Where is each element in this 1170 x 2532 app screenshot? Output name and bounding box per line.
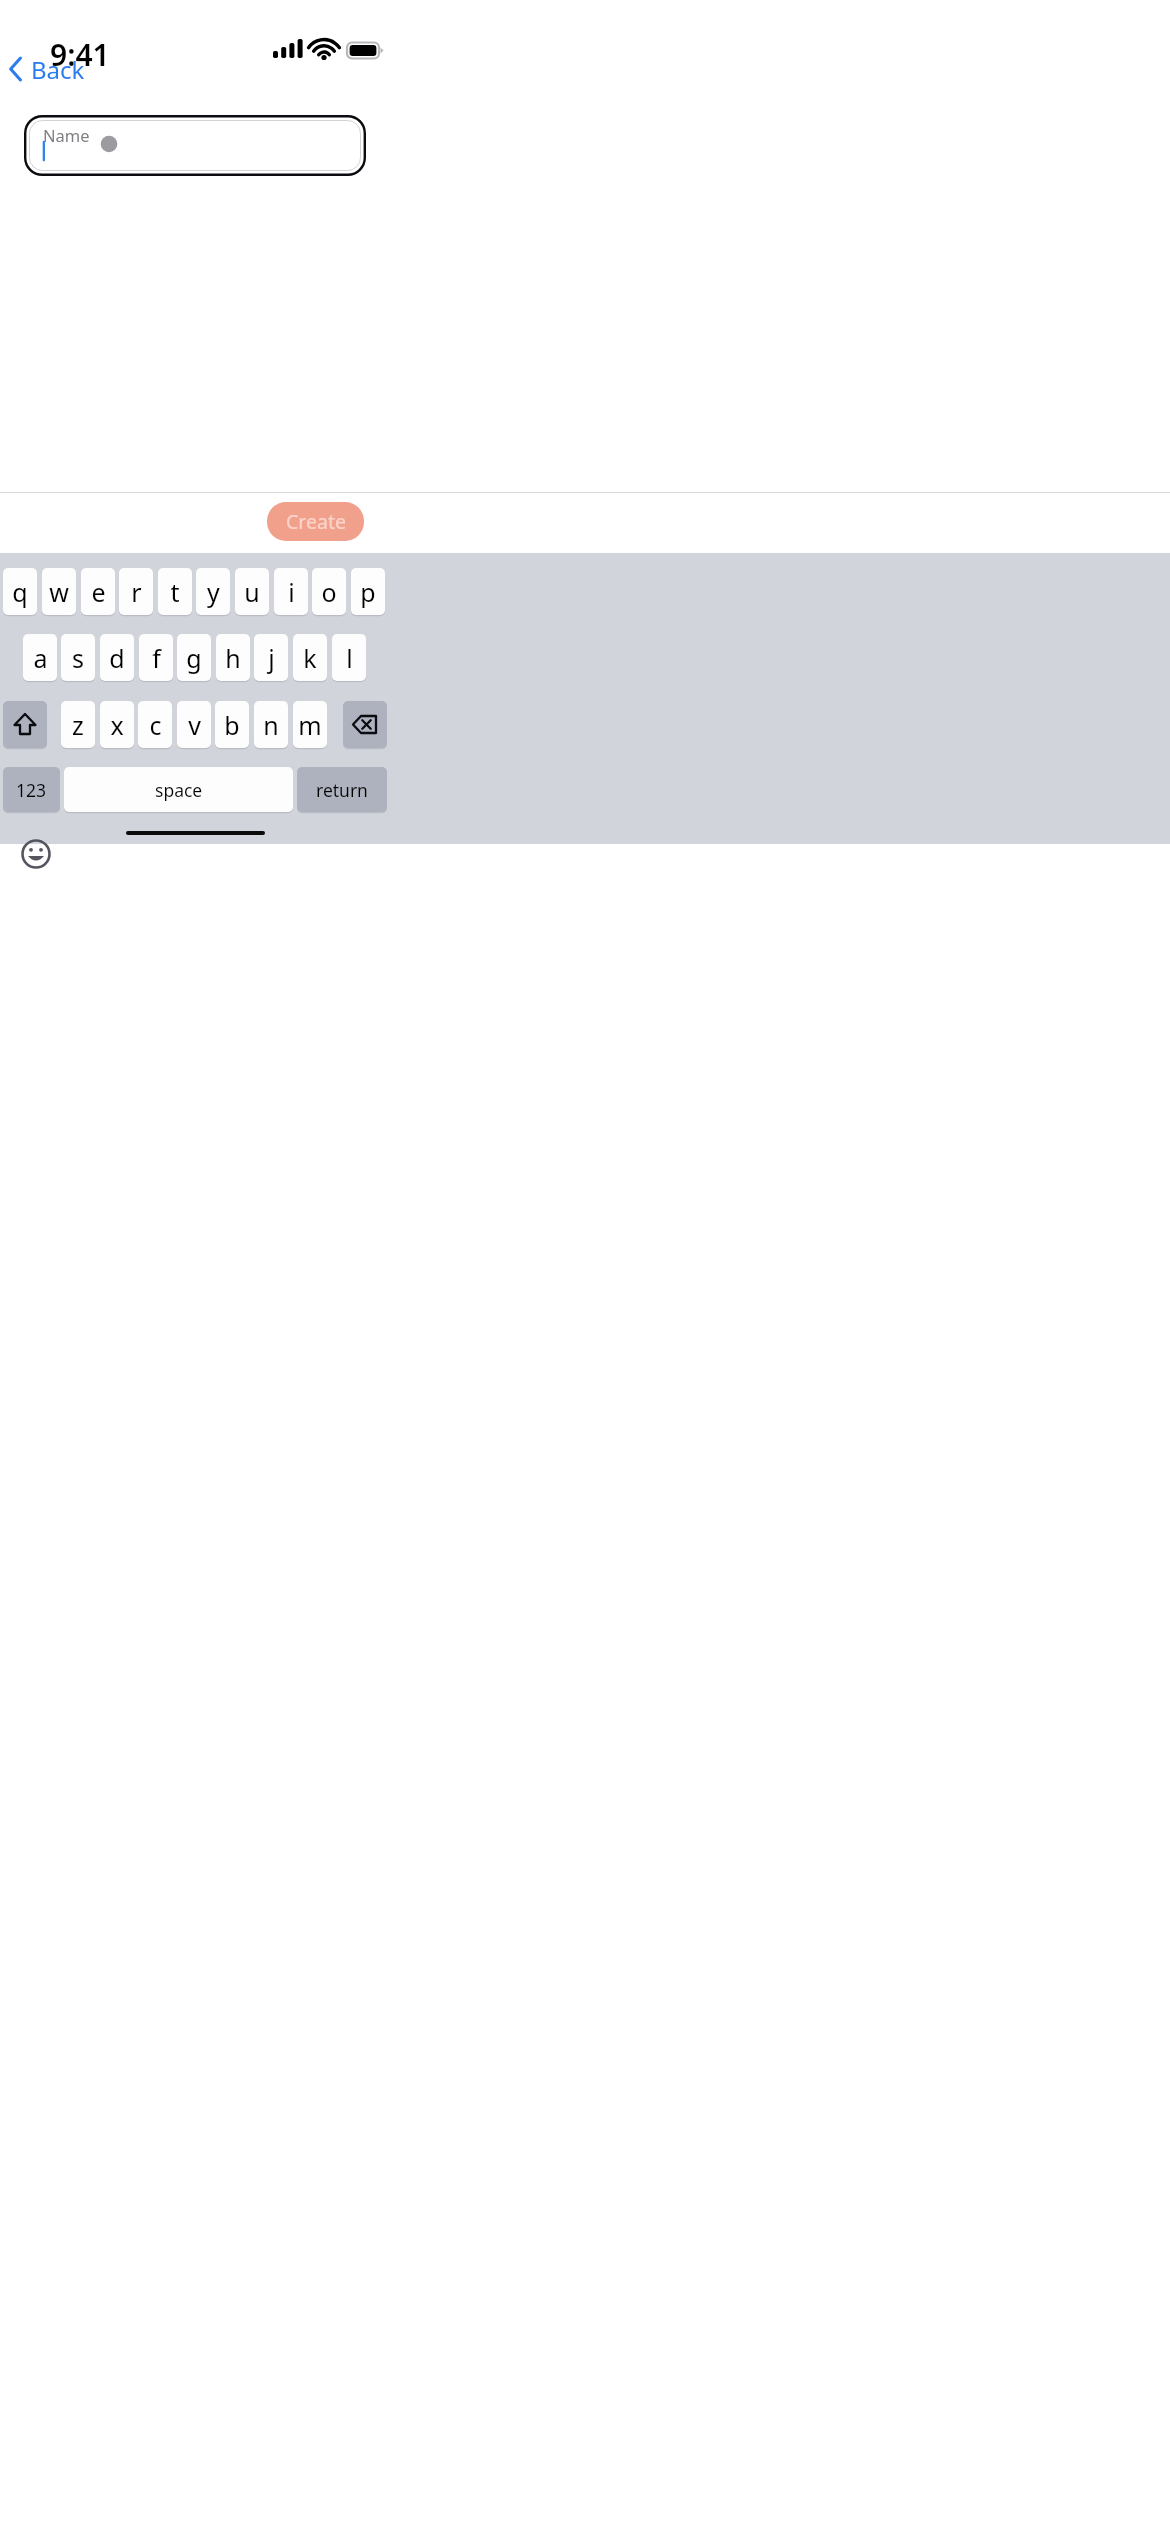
staticText: 123 <box>16 778 47 802</box>
button[interactable]: w <box>42 568 76 615</box>
staticText: y <box>207 575 220 609</box>
staticText: Name <box>43 124 90 146</box>
button[interactable]: u <box>235 568 269 615</box>
staticText: s <box>72 641 84 675</box>
staticText: w <box>49 575 69 609</box>
button[interactable]: Back <box>3 51 91 87</box>
button[interactable]: 123 <box>3 767 60 812</box>
staticText: d <box>109 641 125 675</box>
staticText: n <box>263 708 279 742</box>
staticText: o <box>321 575 337 609</box>
button[interactable]: o <box>312 568 346 615</box>
button[interactable]: x <box>100 701 134 748</box>
button[interactable]: h <box>216 634 250 681</box>
button[interactable]: q <box>3 568 37 615</box>
button[interactable]: Shift <box>3 701 47 748</box>
staticText: l <box>346 641 353 675</box>
staticText: h <box>225 641 241 675</box>
staticText: f <box>152 641 161 675</box>
button[interactable]: t <box>158 568 192 615</box>
staticText: q <box>12 575 28 609</box>
button[interactable]: d <box>100 634 134 681</box>
staticText: Back <box>31 53 85 86</box>
staticText: e <box>91 575 106 609</box>
staticText: i <box>288 575 295 609</box>
button[interactable]: space <box>64 767 293 812</box>
button[interactable]: y <box>196 568 230 615</box>
staticText: m <box>298 708 322 742</box>
button[interactable]: f <box>139 634 173 681</box>
button[interactable]: b <box>215 701 249 748</box>
button[interactable]: l <box>332 634 366 681</box>
staticText: c <box>149 708 162 742</box>
button[interactable]: Backspace <box>343 701 387 748</box>
button[interactable]: g <box>177 634 211 681</box>
button[interactable]: return <box>297 767 387 812</box>
button[interactable]: k <box>293 634 327 681</box>
staticText: a <box>33 641 48 675</box>
button[interactable]: z <box>61 701 95 748</box>
button[interactable]: v <box>177 701 211 748</box>
staticText: b <box>224 708 240 742</box>
button[interactable]: j <box>254 634 288 681</box>
staticText: t <box>170 575 180 609</box>
staticText: j <box>268 641 275 675</box>
button[interactable]: Create <box>267 502 364 541</box>
button[interactable]: s <box>61 634 95 681</box>
staticText: space <box>155 778 203 802</box>
button[interactable]: Emoji keyboard <box>18 836 54 872</box>
staticText: Create <box>286 508 346 535</box>
staticText: return <box>316 778 368 802</box>
staticText: x <box>110 708 124 742</box>
button[interactable]: Name <box>24 115 366 176</box>
staticText: z <box>72 708 84 742</box>
button[interactable]: a <box>23 634 57 681</box>
button[interactable]: p <box>351 568 385 615</box>
button[interactable]: e <box>81 568 115 615</box>
button[interactable]: m <box>293 701 327 748</box>
button[interactable]: c <box>138 701 172 748</box>
staticText: u <box>244 575 260 609</box>
button[interactable]: r <box>119 568 153 615</box>
button[interactable]: n <box>254 701 288 748</box>
staticText: r <box>131 575 142 609</box>
staticText: k <box>303 641 317 675</box>
staticText: 9:41 <box>50 34 110 75</box>
staticText: v <box>188 708 201 742</box>
button[interactable]: i <box>274 568 308 615</box>
staticText: g <box>186 641 202 675</box>
staticText: p <box>360 575 376 609</box>
